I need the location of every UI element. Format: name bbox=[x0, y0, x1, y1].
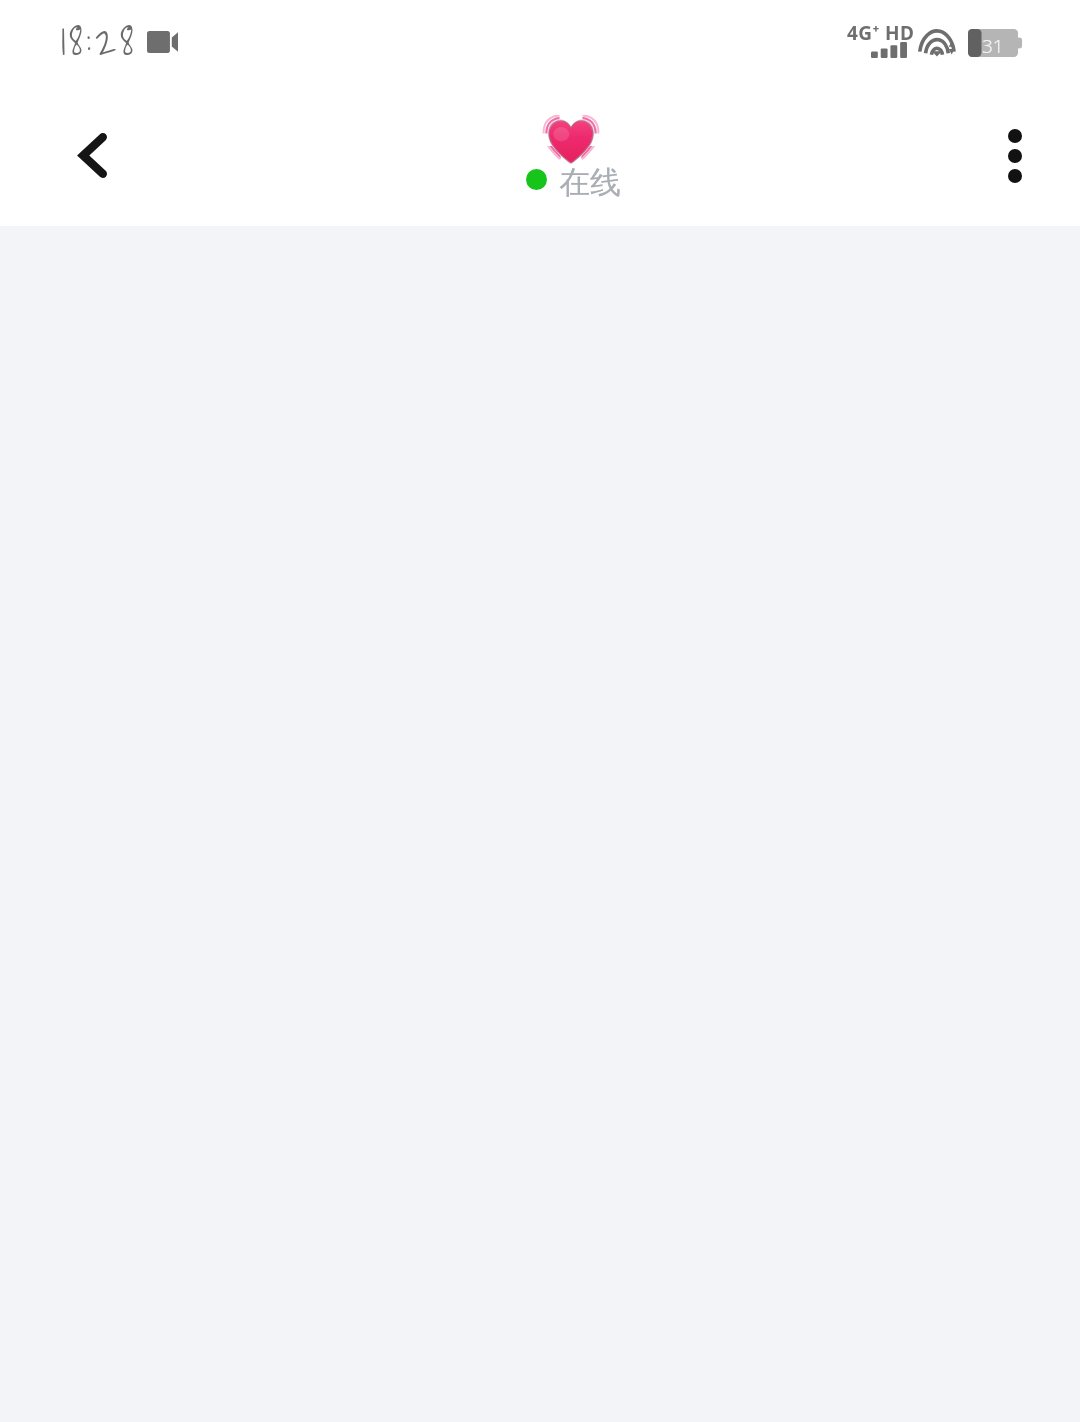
staticText: 在线 bbox=[559, 163, 621, 202]
staticText: 18:28 bbox=[61, 6, 138, 73]
staticText: 31 bbox=[982, 33, 1004, 59]
button[interactable]: 在线 bbox=[470, 104, 670, 204]
staticText: 4G⁺ HD bbox=[847, 20, 915, 46]
button[interactable]: Back bbox=[50, 111, 146, 207]
button[interactable]: More options bbox=[967, 107, 1063, 203]
